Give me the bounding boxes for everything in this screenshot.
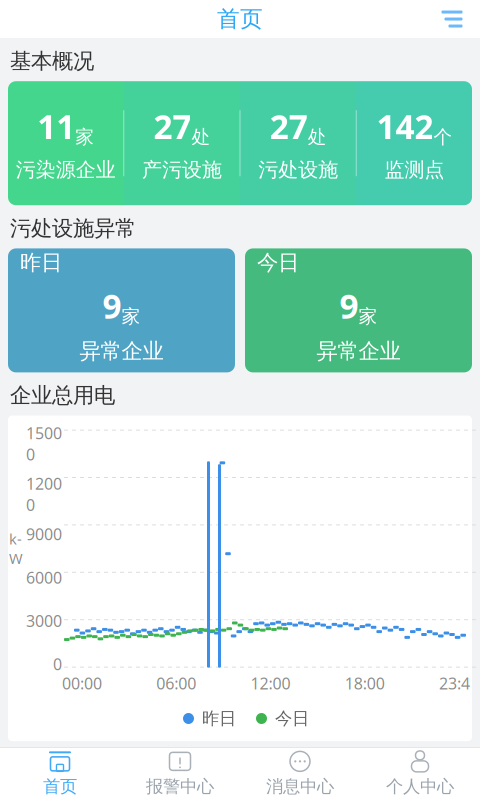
staticText: 06:00 (156, 673, 196, 694)
staticText: 00:00 (62, 673, 102, 694)
staticText: 今日 (257, 250, 299, 276)
staticText: 家 (358, 305, 377, 328)
button[interactable]: 个人中心 (360, 748, 480, 800)
staticText: 企业总用电 (10, 382, 115, 409)
staticText: 污处设施异常 (10, 215, 136, 241)
button[interactable]: 首页 (0, 748, 120, 800)
staticText: kW (9, 529, 23, 568)
staticText: 报警中心 (146, 776, 214, 797)
staticText: 基本概况 (10, 48, 94, 74)
staticText: 污染源企业 (16, 158, 116, 182)
button[interactable]: 菜单 (430, 0, 474, 38)
staticText: 处 (191, 126, 210, 148)
staticText: 监测点 (384, 158, 444, 182)
staticText: 个 (433, 126, 452, 148)
staticText: 9 (102, 284, 121, 328)
staticText: 消息中心 (266, 776, 334, 797)
staticText: 6000 (26, 567, 62, 588)
staticText: 产污设施 (142, 158, 222, 182)
staticText: 异常企业 (316, 338, 400, 364)
button[interactable]: 11 (8, 81, 123, 205)
staticText: 9000 (26, 523, 62, 545)
button[interactable]: 27 (240, 81, 356, 205)
staticText: 27 (153, 104, 191, 149)
button[interactable]: 今日 (245, 248, 472, 372)
button[interactable]: 27 (124, 81, 239, 205)
staticText: 27 (270, 104, 308, 149)
button[interactable]: 昨日 (8, 248, 235, 372)
button[interactable]: 142 (357, 81, 472, 205)
staticText: 15000 (26, 422, 62, 465)
staticText: 0 (53, 653, 62, 675)
staticText: 个人中心 (386, 776, 454, 797)
staticText: 9 (339, 284, 358, 328)
staticText: 家 (75, 126, 94, 148)
staticText: 污处设施 (258, 158, 338, 182)
staticText: 11 (37, 104, 75, 149)
staticText: 处 (308, 126, 327, 148)
staticText: 家 (121, 305, 140, 328)
staticText: 首页 (217, 5, 263, 33)
staticText: 昨日 (20, 250, 62, 276)
button[interactable]: 报警中心 (120, 748, 240, 800)
staticText: 异常企业 (79, 338, 163, 364)
staticText: 18:00 (345, 673, 385, 694)
staticText: 23:4 (439, 673, 470, 694)
button[interactable]: 消息中心 (240, 748, 360, 800)
staticText: 12000 (26, 473, 62, 515)
staticText: 3000 (26, 610, 62, 631)
staticText: 142 (376, 104, 433, 149)
staticText: 昨日 (202, 708, 236, 729)
staticText: 12:00 (250, 673, 290, 694)
staticText: 首页 (43, 776, 77, 797)
staticText: 今日 (275, 708, 309, 729)
